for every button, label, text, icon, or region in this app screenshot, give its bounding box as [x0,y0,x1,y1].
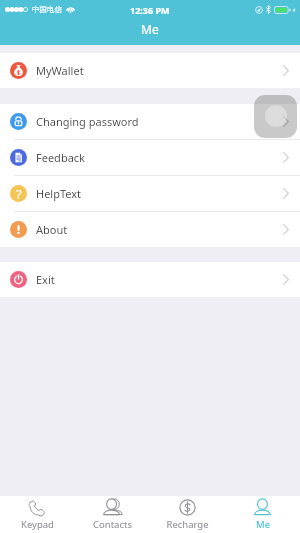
staticText: ? [16,185,22,202]
button[interactable]: Keypad [0,496,75,533]
button[interactable]: ? [0,176,300,211]
staticText: Feedback [36,150,85,165]
staticText: MyWallet [36,63,84,78]
button[interactable]: Exit [0,262,300,297]
button[interactable]: Recharge [150,496,225,533]
staticText: 中国电信 [32,5,62,14]
button[interactable]: About [0,212,300,247]
button[interactable]: Contacts [75,496,150,533]
button[interactable]: Me [225,496,300,533]
staticText: About [36,222,68,237]
staticText: Me [256,518,270,531]
staticText: HelpText [36,186,82,201]
staticText: Keypad [21,518,54,531]
staticText: Recharge [166,518,209,531]
staticText: 12:36 PM [130,4,170,16]
button[interactable]: MyWallet [0,53,300,88]
button[interactable]: Changing password [0,104,300,139]
staticText: Exit [36,272,55,287]
staticText: Me [141,21,159,37]
staticText: Changing password [36,114,139,129]
button[interactable]: Feedback [0,140,300,175]
staticText: Contacts [93,518,132,531]
